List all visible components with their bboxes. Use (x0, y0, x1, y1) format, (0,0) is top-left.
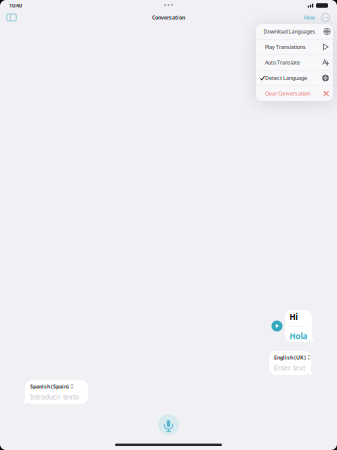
staticText: Conversation (152, 14, 185, 21)
staticText: Detect Language (265, 74, 307, 82)
button[interactable]: Play translation (270, 319, 283, 332)
staticText: Introducir texto (30, 392, 79, 401)
button[interactable]: English (UK) (269, 351, 311, 375)
staticText: View (303, 14, 314, 21)
button[interactable]: View (303, 11, 314, 24)
staticText: Hola (289, 331, 307, 341)
button[interactable]: Play Translations (256, 39, 333, 54)
staticText: Play Translations (265, 43, 306, 51)
button[interactable]: Start listening (154, 411, 182, 439)
staticText: Hi (289, 312, 297, 322)
staticText: Clear Conversation (265, 90, 310, 97)
staticText: Auto Translate (265, 59, 300, 66)
button[interactable]: Detect Language (256, 70, 333, 85)
button[interactable]: Download Languages (256, 24, 333, 39)
button[interactable]: Clear Conversation (256, 86, 333, 101)
button[interactable]: Spanish (Spain) (25, 380, 88, 404)
button[interactable]: Show sidebar (4, 11, 18, 24)
staticText: Enter text (274, 363, 305, 372)
button[interactable]: Auto Translate (256, 55, 333, 70)
staticText: English (UK) (274, 354, 306, 361)
button[interactable]: More options (318, 11, 332, 24)
staticText: Spanish (Spain) (30, 383, 69, 390)
staticText: Download Languages (263, 28, 315, 35)
staticText: 10:40 (9, 2, 22, 9)
